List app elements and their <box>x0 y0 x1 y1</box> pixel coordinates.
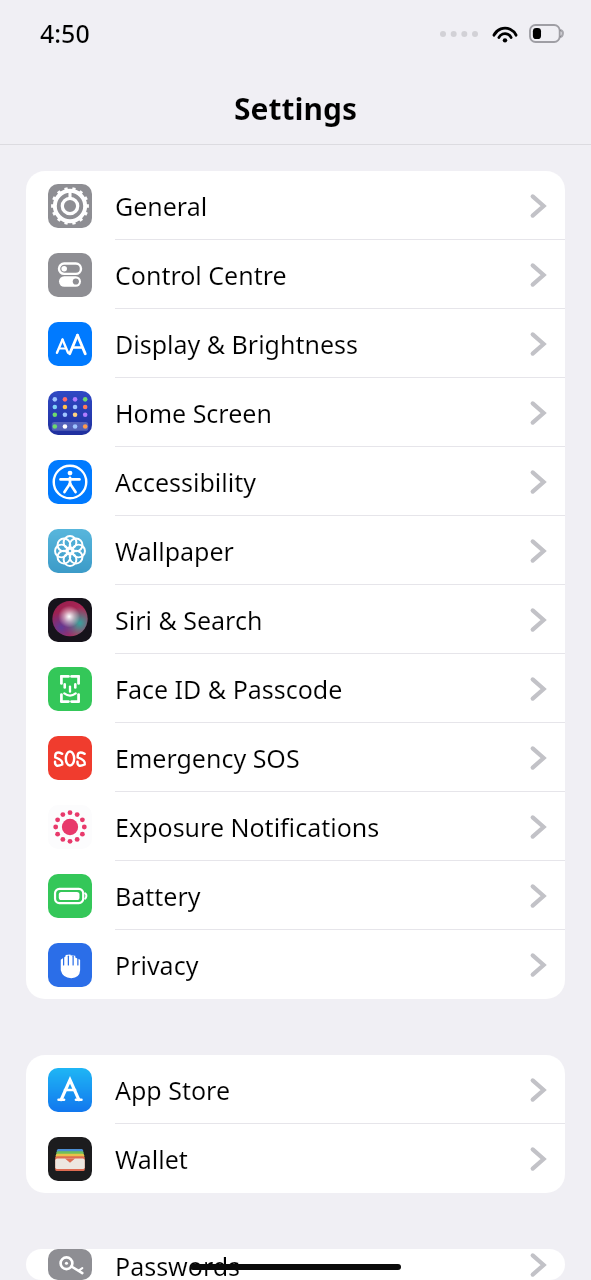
staticText: Wallet <box>115 1142 531 1176</box>
staticText: Display & Brightness <box>115 327 531 361</box>
staticText: Privacy <box>115 948 531 982</box>
button[interactable]: Exposure Notifications <box>26 792 565 861</box>
button[interactable]: Siri & Search <box>26 585 565 654</box>
button[interactable]: Display & Brightness <box>26 309 565 378</box>
staticText: Emergency SOS <box>115 741 531 775</box>
button[interactable]: Emergency SOS <box>26 723 565 792</box>
staticText: Face ID & Passcode <box>115 672 531 706</box>
staticText: Battery <box>115 879 531 913</box>
button[interactable]: Battery <box>26 861 565 930</box>
button[interactable]: Wallpaper <box>26 516 565 585</box>
button[interactable]: General <box>26 171 565 240</box>
staticText: 4:50 <box>40 16 90 50</box>
button[interactable]: Privacy <box>26 930 565 999</box>
button[interactable]: Passwords <box>26 1249 565 1280</box>
staticText: Passwords <box>115 1249 531 1280</box>
staticText: Siri & Search <box>115 603 531 637</box>
button[interactable]: Wallet <box>26 1124 565 1193</box>
staticText: App Store <box>115 1073 531 1107</box>
button[interactable]: Accessibility <box>26 447 565 516</box>
staticText: Exposure Notifications <box>115 810 531 844</box>
button[interactable]: Home Screen <box>26 378 565 447</box>
button[interactable]: App Store <box>26 1055 565 1124</box>
staticText: Home Screen <box>115 396 531 430</box>
staticText: Wallpaper <box>115 534 531 568</box>
staticText: General <box>115 189 531 223</box>
button[interactable]: Face ID & Passcode <box>26 654 565 723</box>
staticText: Settings <box>234 88 357 129</box>
staticText: Accessibility <box>115 465 531 499</box>
staticText: Control Centre <box>115 258 531 292</box>
button[interactable]: Control Centre <box>26 240 565 309</box>
